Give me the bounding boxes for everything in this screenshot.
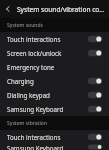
staticText: Charging — [7, 77, 88, 85]
staticText: Samsung Keyboard — [7, 105, 88, 113]
button[interactable]: Samsung Keyboard — [0, 144, 109, 150]
staticText: System sound/vibration control — [17, 5, 105, 14]
button[interactable]: Touch interactions — [0, 130, 109, 144]
staticText: Dialing keypad — [7, 91, 88, 99]
staticText: Samsung Keyboard — [7, 144, 88, 150]
staticText: Touch interactions — [7, 133, 88, 141]
staticText: Touch interactions — [7, 35, 88, 43]
button[interactable]: Back — [0, 1, 16, 17]
staticText: System sounds — [7, 22, 43, 29]
button[interactable]: Samsung Keyboard — [0, 102, 109, 116]
button[interactable]: Dialing keypad — [0, 88, 109, 102]
button[interactable]: Charging — [0, 74, 109, 88]
button[interactable]: Touch interactions — [0, 32, 109, 46]
button[interactable]: Screen lock/unlock — [0, 46, 109, 60]
staticText: Emergency tone — [7, 63, 102, 71]
staticText: Screen lock/unlock — [7, 49, 88, 57]
button[interactable]: Emergency tone — [0, 60, 109, 74]
staticText: System vibration — [7, 120, 48, 127]
